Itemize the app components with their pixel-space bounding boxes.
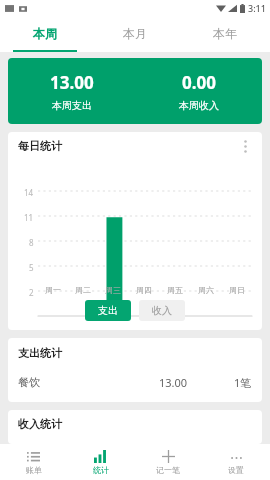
staticText: 本周 <box>33 26 57 41</box>
staticText: 14 <box>24 187 34 198</box>
staticText: 5 <box>29 262 34 273</box>
staticText: 本年 <box>213 26 237 41</box>
staticText: 统计 <box>93 465 109 475</box>
button[interactable]: 餐饮 <box>8 368 262 396</box>
staticText: 周三 <box>105 285 121 295</box>
staticText: 13.00 <box>50 71 94 94</box>
button[interactable]: 账单 <box>0 444 67 480</box>
staticText: 账单 <box>26 465 42 475</box>
staticText: 收入 <box>152 304 172 317</box>
staticText: 1笔 <box>234 375 252 390</box>
staticText: 周五 <box>167 285 183 295</box>
button[interactable]: 本年 <box>180 16 270 50</box>
staticText: 11 <box>24 212 34 223</box>
staticText: 本月 <box>123 26 147 41</box>
staticText: 支出 <box>98 304 118 317</box>
staticText: 周日 <box>229 285 245 295</box>
staticText: 收入统计 <box>18 417 62 431</box>
button[interactable]: 13.00 <box>8 58 262 124</box>
staticText: 周四 <box>136 285 152 295</box>
staticText: 支出统计 <box>18 346 62 360</box>
button[interactable]: 支出 <box>85 300 131 321</box>
staticText: 周一 <box>45 285 61 295</box>
button[interactable]: 统计 <box>67 444 134 480</box>
staticText: 8 <box>29 237 34 248</box>
staticText: 2 <box>29 287 34 296</box>
staticText: 0.00 <box>182 71 216 94</box>
staticText: 13.00 <box>159 375 188 390</box>
staticText: 周二 <box>75 285 91 295</box>
button[interactable]: More options <box>236 137 254 155</box>
staticText: 每日统计 <box>18 139 62 153</box>
button[interactable]: 设置 <box>202 444 270 480</box>
button[interactable]: 记一笔 <box>134 444 202 480</box>
button[interactable]: 本月 <box>90 16 180 50</box>
staticText: 设置 <box>228 465 244 475</box>
button[interactable]: 本周 <box>0 16 90 50</box>
staticText: 本周支出 <box>52 99 92 112</box>
staticText: 记一笔 <box>156 465 180 475</box>
staticText: 周六 <box>198 285 214 295</box>
staticText: 本周收入 <box>179 99 219 112</box>
staticText: 餐饮 <box>18 375 40 389</box>
staticText: 3:11 <box>248 2 266 14</box>
button[interactable]: 收入 <box>139 300 185 321</box>
